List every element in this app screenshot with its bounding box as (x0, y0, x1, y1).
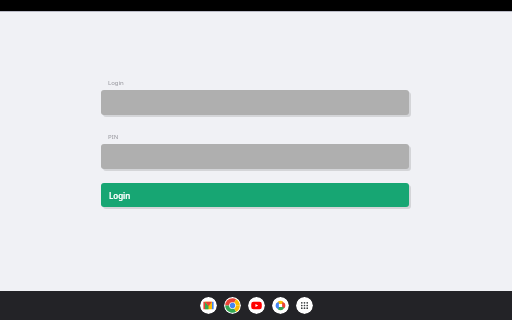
button[interactable]: All apps (296, 297, 313, 314)
staticText: Login (109, 190, 131, 201)
button[interactable]: Chrome (224, 297, 241, 314)
button[interactable]: Google Photos (272, 297, 289, 314)
button[interactable]: Login (101, 183, 409, 207)
button[interactable]: YouTube (248, 297, 265, 314)
staticText: Login (108, 79, 124, 87)
staticText: PIN (108, 133, 119, 141)
button[interactable]: Gmail (200, 297, 217, 314)
